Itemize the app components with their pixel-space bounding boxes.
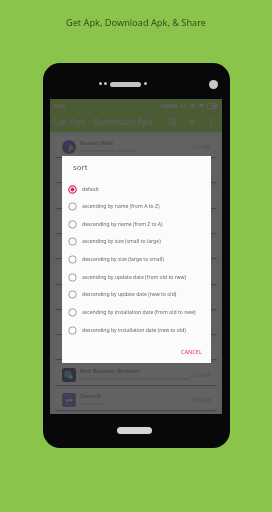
button[interactable]: Bolt Browser Browser <box>55 364 217 385</box>
staticText: sort <box>73 162 88 173</box>
staticText: ascending by update date (from old to ne… <box>82 274 187 281</box>
staticText: 70.90 MB <box>191 397 211 403</box>
staticText: 5.17 MB <box>193 144 211 150</box>
staticText: default <box>82 186 99 193</box>
staticText: Safe and faster browser for faster downl… <box>80 376 191 382</box>
staticText: Simple. Secure. Reliable messaging. <box>80 275 151 281</box>
button[interactable]: ascending by size (small to large) <box>62 233 211 250</box>
staticText: Spotify: Music and Podcasts <box>80 215 158 223</box>
staticText: com.discord <box>80 401 105 407</box>
staticText: 6:54 <box>54 102 65 109</box>
staticText: Rocket Web <box>80 139 113 147</box>
button[interactable]: ascending by update date (from old to ne… <box>62 269 211 286</box>
button[interactable]: Search <box>165 114 181 130</box>
button[interactable]: ascending by name (from A to Z) <box>62 198 211 215</box>
button[interactable]: Signal Private Messenger <box>55 161 217 182</box>
staticText: Discord <box>80 392 101 400</box>
staticText: ascending by installation date (from old… <box>82 309 196 316</box>
staticText: Real People. Real Videos. <box>80 199 129 205</box>
staticText: Telegram <box>80 240 106 248</box>
button[interactable]: More options <box>203 114 219 130</box>
button[interactable]: WhatsApp Messenger <box>55 263 217 284</box>
staticText: info.kmspme1232.rocketweb <box>80 148 138 154</box>
staticText: descending by name (from Z to A) <box>82 221 163 228</box>
button[interactable]: descending by size (large to small) <box>62 251 211 268</box>
button[interactable]: Opera Mini browser beta <box>55 313 217 334</box>
staticText: descending by installation date (new to … <box>82 327 186 334</box>
button[interactable]: descending by installation date (new to … <box>62 322 211 339</box>
button[interactable]: default <box>62 181 211 198</box>
staticText: Listen to songs and playlists <box>80 224 136 230</box>
button[interactable]: Rocket Web <box>55 136 217 157</box>
staticText: descending by size (large to small) <box>82 256 164 263</box>
staticText: descending by update date (new to old) <box>82 291 177 298</box>
staticText: Fast web browser with data saving <box>80 325 148 331</box>
button[interactable]: descending by name (from Z to A) <box>62 216 211 233</box>
button[interactable]: Discord <box>55 389 217 410</box>
staticText: Get Apk, Download Apk, & Share <box>0 16 272 29</box>
staticText: 0.0KB/s <box>161 103 178 109</box>
staticText: ascending by size (small to large) <box>82 238 161 245</box>
staticText: Bolt Browser Browser <box>80 367 141 375</box>
button[interactable]: Spotify: Music and Podcasts <box>55 212 217 233</box>
staticText: Signal Private Messenger <box>80 164 151 172</box>
button[interactable]: descending by update date (new to old) <box>62 286 211 303</box>
button[interactable]: TikTok <box>55 187 217 208</box>
staticText: 25.10 MB <box>191 372 211 378</box>
button[interactable]: Sort <box>184 114 200 130</box>
staticText: 1.70 MB <box>193 346 211 352</box>
button[interactable]: Facebook Lite <box>55 338 217 359</box>
button[interactable]: Telegram <box>55 237 217 258</box>
button[interactable]: CANCEL <box>179 346 204 357</box>
button[interactable]: ascending by installation date (from old… <box>62 304 211 321</box>
button[interactable]: Instagram <box>55 288 217 309</box>
staticText: Instagram <box>80 291 110 299</box>
staticText: ascending by name (from A to Z) <box>82 203 160 210</box>
staticText: CANCEL <box>181 348 202 355</box>
staticText: Get Apk - Download Apk <box>53 116 153 128</box>
staticText: TikTok <box>80 190 99 198</box>
